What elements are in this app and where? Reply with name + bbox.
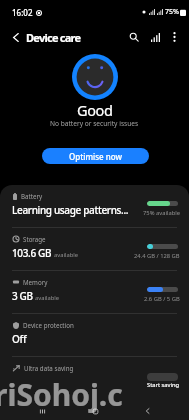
button[interactable]: Search xyxy=(124,27,144,47)
staticText: Good xyxy=(77,100,113,120)
staticText: Learning usage patterns... xyxy=(12,203,129,217)
button[interactable]: Optimise now xyxy=(42,148,149,164)
staticText: 24.4 GB / 128 GB xyxy=(134,252,180,260)
button[interactable]: Recents xyxy=(32,402,52,420)
button[interactable]: Back xyxy=(137,402,157,420)
staticText: Ultra data saving xyxy=(24,364,74,372)
button[interactable]: Home xyxy=(85,402,105,420)
button[interactable]: More options xyxy=(164,27,184,47)
staticText: Storage xyxy=(23,235,46,243)
button[interactable]: Ultra data saving xyxy=(0,357,189,400)
staticText: 75% xyxy=(165,7,179,17)
staticText: 3 GB xyxy=(12,289,33,303)
button[interactable]: Back xyxy=(5,25,27,49)
staticText: riSohoj.c xyxy=(0,374,123,415)
staticText: 103.6 GB xyxy=(12,246,52,260)
staticText: Device care xyxy=(26,30,81,45)
staticText: Optimise now xyxy=(69,151,122,162)
staticText: Off xyxy=(12,332,27,346)
staticText: available xyxy=(54,251,79,259)
staticText: 75% available xyxy=(143,209,180,217)
staticText: 16:02 xyxy=(12,7,33,18)
button[interactable]: Memory xyxy=(0,271,189,314)
button[interactable] xyxy=(147,373,178,381)
staticText: Battery xyxy=(21,192,43,200)
staticText: No battery or security issues xyxy=(50,119,139,128)
staticText: Device protection xyxy=(23,321,74,329)
staticText: Memory xyxy=(23,278,48,286)
button[interactable]: Usage statistics xyxy=(145,27,165,47)
staticText: 2.6 GB / 5 GB xyxy=(144,295,180,303)
button[interactable]: Storage xyxy=(0,228,189,271)
staticText: available xyxy=(35,294,60,302)
button[interactable]: Device protection xyxy=(0,314,189,357)
button[interactable]: Battery xyxy=(0,185,189,228)
staticText: Start saving xyxy=(147,381,180,389)
